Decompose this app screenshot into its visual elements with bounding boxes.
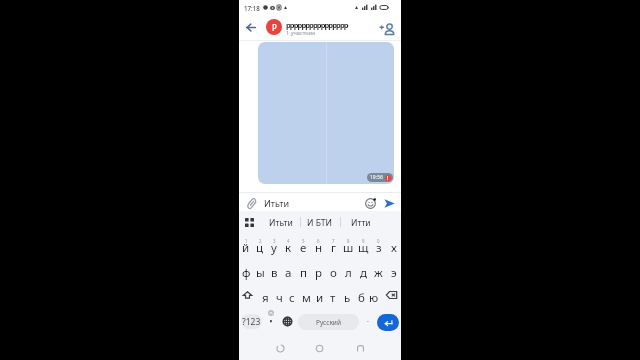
button[interactable]: д xyxy=(356,263,371,283)
staticText: й xyxy=(242,240,250,256)
staticText: Русский xyxy=(316,318,341,327)
staticText: ф xyxy=(242,265,251,281)
button[interactable]: ч xyxy=(272,289,286,307)
staticText: 7 xyxy=(332,238,335,244)
button[interactable]: Recents xyxy=(353,341,367,355)
button[interactable]: ц xyxy=(253,239,267,256)
staticText: 0 xyxy=(377,238,380,244)
staticText: с xyxy=(289,290,295,306)
staticText: щ xyxy=(358,240,369,256)
staticText: ц xyxy=(256,240,264,256)
staticText: ь xyxy=(344,290,351,306)
button[interactable]: Back xyxy=(273,341,287,355)
button[interactable]: 19:56 xyxy=(258,42,394,184)
staticText: р xyxy=(315,265,322,281)
staticText: в xyxy=(271,265,278,281)
button[interactable]: И БТИ xyxy=(300,212,340,233)
button[interactable]: г xyxy=(326,239,341,256)
staticText: 1 участник xyxy=(286,29,316,37)
staticText: 8 xyxy=(347,238,350,244)
staticText: Итти xyxy=(351,217,371,229)
button[interactable]: т xyxy=(326,289,340,307)
button[interactable]: Back xyxy=(244,20,258,34)
button[interactable]: й xyxy=(239,239,253,256)
button[interactable]: з xyxy=(371,239,386,256)
button[interactable]: с xyxy=(285,289,299,307)
staticText: ?123 xyxy=(242,316,261,328)
staticText: п xyxy=(300,265,307,281)
button[interactable]: ф xyxy=(239,263,253,283)
staticText: л xyxy=(345,265,352,281)
staticText: 19:56 xyxy=(370,174,383,181)
staticText: т xyxy=(330,290,336,306)
staticText: Итьти xyxy=(269,217,293,229)
staticText: 2 xyxy=(259,238,262,244)
button[interactable]: б xyxy=(354,289,368,307)
button[interactable]: Backspace xyxy=(384,288,398,302)
staticText: pppppppppppppppp xyxy=(286,20,348,30)
button[interactable]: м xyxy=(299,289,313,307)
staticText: 17:18 xyxy=(244,4,260,12)
staticText: д xyxy=(360,265,367,281)
staticText: б xyxy=(358,290,365,306)
button[interactable]: ы xyxy=(253,263,267,283)
button[interactable]: Enter xyxy=(377,314,399,331)
button[interactable]: н xyxy=(311,239,326,256)
staticText: ю xyxy=(369,290,379,306)
button[interactable]: р xyxy=(311,263,326,283)
staticText: к xyxy=(285,240,292,256)
button[interactable]: Русский xyxy=(298,314,359,330)
button[interactable]: ь xyxy=(340,289,354,307)
staticText: 3 xyxy=(273,238,276,244)
staticText: я xyxy=(262,290,269,306)
button[interactable]: в xyxy=(267,263,281,283)
staticText: а xyxy=(285,265,292,281)
button[interactable]: Keyboard menu xyxy=(242,215,257,230)
button[interactable]: Emoji xyxy=(363,196,377,210)
staticText: 1 xyxy=(245,238,248,244)
staticText: 9 xyxy=(362,238,365,244)
button[interactable]: ю xyxy=(367,289,381,307)
staticText: ж xyxy=(374,265,383,281)
button[interactable]: о xyxy=(326,263,341,283)
button[interactable]: Итти xyxy=(340,212,382,233)
staticText: е xyxy=(300,240,307,256)
staticText: и xyxy=(316,290,324,306)
staticText: ш xyxy=(343,240,354,256)
button[interactable]: ш xyxy=(341,239,356,256)
button[interactable]: п xyxy=(296,263,311,283)
button[interactable]: Add member xyxy=(378,19,397,38)
staticText: х xyxy=(391,240,397,256)
button[interactable]: Send xyxy=(382,196,396,210)
button[interactable]: щ xyxy=(356,239,371,256)
button[interactable]: . xyxy=(362,314,374,326)
button[interactable]: е xyxy=(296,239,311,256)
button[interactable]: Home xyxy=(312,341,326,355)
button[interactable]: и xyxy=(313,289,327,307)
staticText: 4 xyxy=(287,238,290,244)
staticText: Итьти xyxy=(264,197,290,209)
button[interactable]: Change language xyxy=(281,315,294,328)
button[interactable]: к xyxy=(281,239,296,256)
staticText: 6 xyxy=(317,238,320,244)
button[interactable]: э xyxy=(386,263,401,283)
button[interactable]: P xyxy=(266,19,282,35)
button[interactable]: Voice input xyxy=(264,310,278,324)
button[interactable]: ?123 xyxy=(241,314,262,329)
staticText: ы xyxy=(256,265,265,281)
staticText: г xyxy=(331,240,337,256)
staticText: . xyxy=(367,315,369,325)
button[interactable]: ж xyxy=(371,263,386,283)
button[interactable]: л xyxy=(341,263,356,283)
button[interactable]: Shift xyxy=(240,288,254,302)
staticText: ! xyxy=(387,175,389,181)
staticText: з xyxy=(376,240,382,256)
button[interactable]: я xyxy=(258,289,272,307)
button[interactable]: х xyxy=(386,239,401,256)
button[interactable]: Итьти xyxy=(261,212,300,233)
staticText: ч xyxy=(276,290,283,306)
button[interactable]: а xyxy=(281,263,296,283)
button[interactable]: у xyxy=(267,239,281,256)
staticText: 5 xyxy=(302,238,305,244)
button[interactable]: Attach xyxy=(244,196,258,210)
